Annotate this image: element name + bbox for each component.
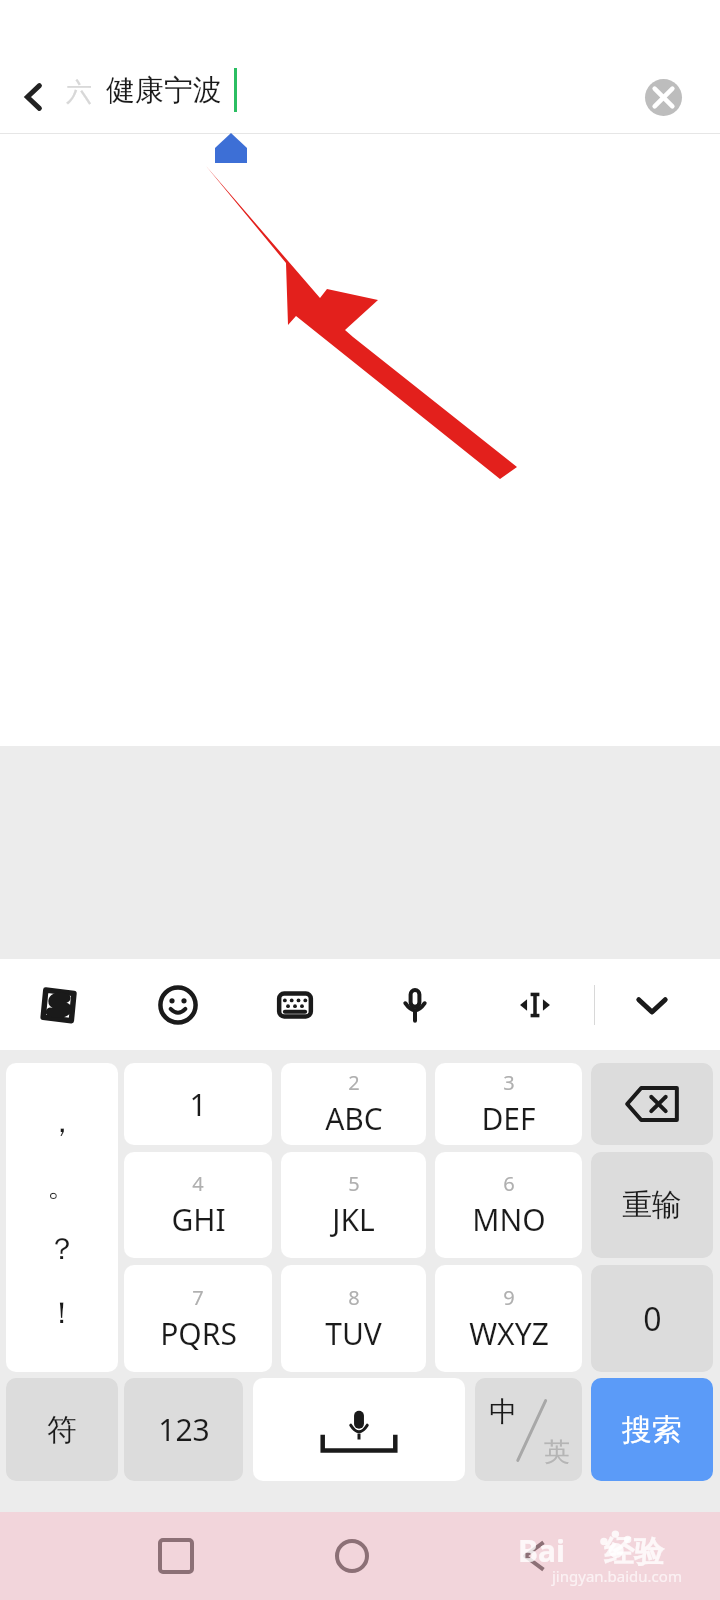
staticText: TUV bbox=[325, 1313, 382, 1354]
staticText: 符 bbox=[47, 1411, 77, 1449]
staticText: 健康宁波 bbox=[106, 72, 222, 109]
button[interactable]: Voice input bbox=[382, 972, 448, 1038]
staticText: 123 bbox=[158, 1409, 210, 1450]
button[interactable]: Keyboard layout bbox=[262, 972, 328, 1038]
staticText: 8 bbox=[348, 1284, 360, 1311]
button[interactable]: 6 bbox=[435, 1152, 582, 1258]
staticText: 6 bbox=[503, 1170, 515, 1197]
staticText: Bai 经验 bbox=[518, 1530, 664, 1571]
staticText: 3 bbox=[503, 1069, 515, 1096]
staticText: MNO bbox=[472, 1199, 546, 1240]
button[interactable]: 5 bbox=[281, 1152, 426, 1258]
button[interactable]: 0 bbox=[591, 1265, 713, 1372]
staticText: 7 bbox=[192, 1284, 204, 1311]
staticText: 5 bbox=[348, 1170, 360, 1197]
staticText: ， bbox=[47, 1103, 77, 1141]
staticText: 搜索 bbox=[622, 1411, 682, 1449]
staticText: 1 bbox=[189, 1084, 207, 1125]
staticText: WXYZ bbox=[469, 1313, 549, 1354]
staticText: 英 bbox=[544, 1436, 570, 1469]
staticText: ？ bbox=[47, 1230, 77, 1268]
staticText: JKL bbox=[332, 1199, 375, 1240]
button[interactable]: Back bbox=[8, 62, 60, 132]
button[interactable]: ， bbox=[6, 1063, 118, 1372]
button[interactable]: Home bbox=[316, 1520, 388, 1592]
staticText: PQRS bbox=[160, 1313, 237, 1354]
button[interactable]: 123 bbox=[124, 1378, 243, 1481]
staticText: 中 bbox=[489, 1394, 517, 1429]
staticText: 。 bbox=[47, 1167, 77, 1205]
staticText: 重输 bbox=[622, 1186, 682, 1224]
button[interactable]: Chinese English toggle bbox=[475, 1378, 582, 1481]
button[interactable]: 4 bbox=[124, 1152, 272, 1258]
button[interactable]: 符 bbox=[6, 1378, 118, 1481]
staticText: 9 bbox=[503, 1284, 515, 1311]
staticText: DEF bbox=[481, 1098, 536, 1139]
button[interactable]: 1 bbox=[124, 1063, 272, 1145]
button[interactable]: 2 bbox=[281, 1063, 426, 1145]
button[interactable]: Move cursor bbox=[502, 972, 568, 1038]
staticText: ABC bbox=[325, 1098, 383, 1139]
button[interactable]: Backspace bbox=[591, 1063, 713, 1145]
button[interactable]: 9 bbox=[435, 1265, 582, 1372]
staticText: GHI bbox=[171, 1199, 226, 1240]
button[interactable]: Emoji bbox=[145, 972, 211, 1038]
button[interactable]: Hide keyboard bbox=[619, 972, 685, 1038]
button[interactable]: 搜索 bbox=[591, 1378, 713, 1481]
button[interactable]: Clear text bbox=[638, 72, 688, 122]
staticText: ！ bbox=[47, 1294, 77, 1332]
staticText: jingyan.baidu.com bbox=[552, 1566, 682, 1586]
button[interactable]: 3 bbox=[435, 1063, 582, 1145]
staticText: 4 bbox=[192, 1170, 204, 1197]
button[interactable]: Back bbox=[500, 1520, 572, 1592]
button[interactable]: 7 bbox=[124, 1265, 272, 1372]
button[interactable]: 8 bbox=[281, 1265, 426, 1372]
staticText: 0 bbox=[643, 1297, 662, 1341]
button[interactable]: Sogou input bbox=[26, 972, 92, 1038]
staticText: 2 bbox=[348, 1069, 360, 1096]
button[interactable]: 重输 bbox=[591, 1152, 713, 1258]
button[interactable]: Space, voice input bbox=[253, 1378, 465, 1481]
button[interactable]: Recents bbox=[140, 1520, 212, 1592]
staticText: 六 bbox=[66, 76, 92, 109]
